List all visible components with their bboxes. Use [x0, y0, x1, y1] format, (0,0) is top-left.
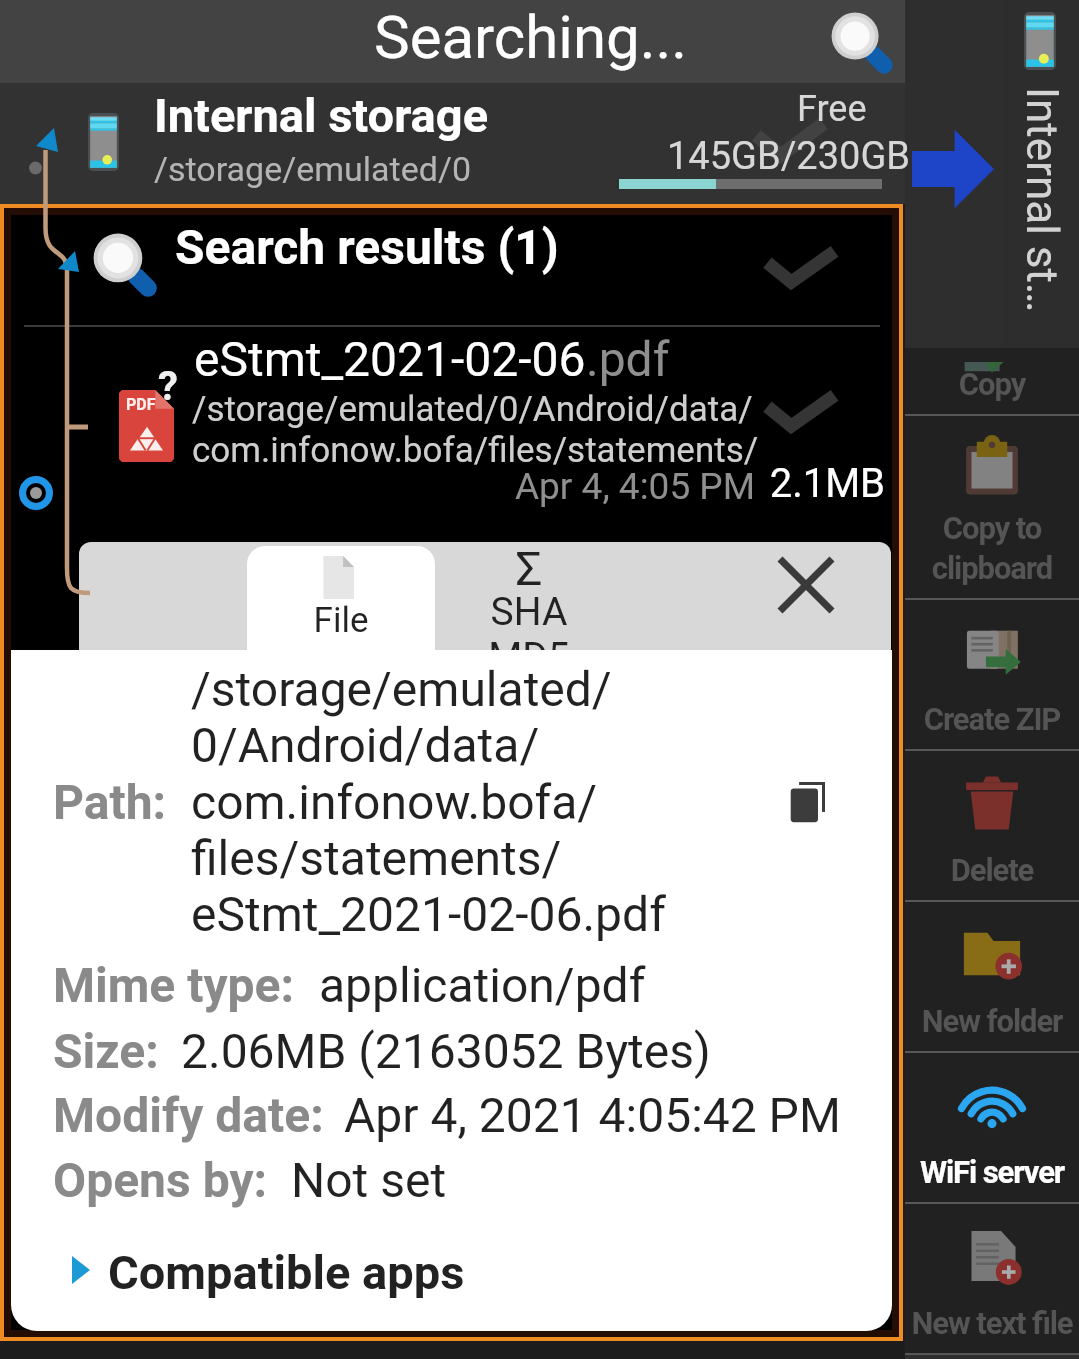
- staticText: com.infonow.bofa/files/statements/: [192, 430, 759, 471]
- staticText: application/pdf: [319, 957, 646, 1013]
- staticText: Search results (1): [175, 219, 559, 275]
- staticText: SHA: [439, 589, 619, 635]
- button[interactable]: Search results (1): [11, 215, 892, 325]
- staticText: 145GB/230GB: [667, 134, 910, 179]
- staticText: WiFi server: [905, 1154, 1079, 1190]
- staticText: Path:: [53, 774, 167, 830]
- staticText: Apr 4, 4:05 PM: [11, 465, 755, 508]
- staticText: Delete: [905, 852, 1079, 888]
- staticText: /storage/emulated/0: [154, 149, 472, 189]
- staticText: Free: [797, 88, 867, 130]
- staticText: Apr 4, 2021 4:05:42 PM: [344, 1087, 841, 1143]
- staticText: 2.06MB (2163052 Bytes): [181, 1023, 711, 1079]
- staticText: New text file: [905, 1305, 1079, 1341]
- button[interactable]: Internal st…: [1002, 0, 1079, 348]
- staticText: New folder: [905, 1003, 1079, 1039]
- staticText: File: [247, 600, 435, 641]
- staticText: /storage/emulated/: [191, 661, 612, 717]
- staticText: .pdf: [586, 331, 670, 387]
- staticText: Searching...: [374, 2, 688, 72]
- staticText: files/statements/: [191, 830, 562, 886]
- staticText: Internal st…: [1016, 87, 1068, 313]
- staticText: Σ: [439, 542, 619, 596]
- staticText: Size:: [53, 1023, 159, 1079]
- button[interactable]: Internal storage: [0, 83, 905, 204]
- button[interactable]: Copy to clipboard: [905, 416, 1079, 598]
- staticText: Copy: [905, 366, 1079, 402]
- button[interactable]: New text file: [905, 1204, 1079, 1353]
- staticText: Compatible apps: [108, 1245, 465, 1300]
- staticText: ?: [158, 363, 178, 410]
- staticText: Modify date:: [53, 1087, 324, 1143]
- staticText: Copy to clipboard: [905, 510, 1079, 586]
- button[interactable]: New folder: [905, 902, 1079, 1051]
- button[interactable]: Copy path: [790, 782, 825, 823]
- button[interactable]: Search: [831, 12, 887, 68]
- staticText: /storage/emulated/0/Android/data/: [192, 389, 753, 430]
- staticText: eStmt_2021-02-06: [194, 331, 586, 387]
- staticText: MD5: [439, 634, 619, 662]
- button[interactable]: Copy: [905, 348, 1079, 414]
- staticText: 2.1MB: [11, 460, 885, 507]
- staticText: Mime type:: [53, 957, 295, 1013]
- button[interactable]: Create ZIP: [905, 600, 1079, 749]
- button[interactable]: Close: [766, 545, 846, 625]
- staticText: com.infonow.bofa/: [191, 774, 598, 830]
- button[interactable]: PDF: [11, 327, 892, 517]
- staticText: PDF: [126, 395, 156, 414]
- staticText: Create ZIP: [905, 701, 1079, 737]
- staticText: Not set: [291, 1152, 447, 1208]
- button[interactable]: Compatible apps: [59, 1236, 509, 1308]
- staticText: Opens by:: [53, 1152, 268, 1208]
- button[interactable]: Delete: [905, 751, 1079, 900]
- button[interactable]: Σ: [439, 542, 619, 662]
- staticText: eStmt_2021-02-06.pdf: [191, 886, 666, 942]
- staticText: 0/Android/data/: [191, 717, 540, 773]
- button[interactable]: File: [247, 546, 435, 662]
- button[interactable]: WiFi server: [905, 1053, 1079, 1202]
- staticText: Internal storage: [154, 88, 489, 143]
